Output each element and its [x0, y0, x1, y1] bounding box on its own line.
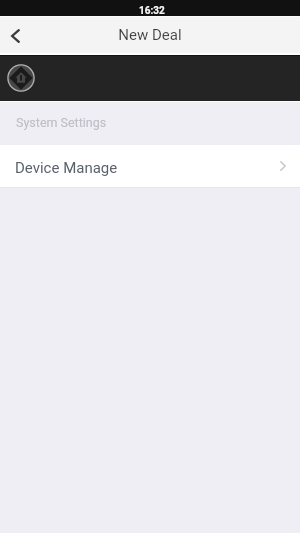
button[interactable]: Home — [7, 64, 35, 92]
button[interactable]: Device Manage — [0, 145, 300, 187]
staticText: Device Manage — [15, 159, 118, 177]
button[interactable]: Back — [0, 17, 30, 55]
staticText: 16:32 — [139, 5, 165, 16]
staticText: New Deal — [118, 26, 182, 44]
staticText: System Settings — [16, 115, 107, 130]
